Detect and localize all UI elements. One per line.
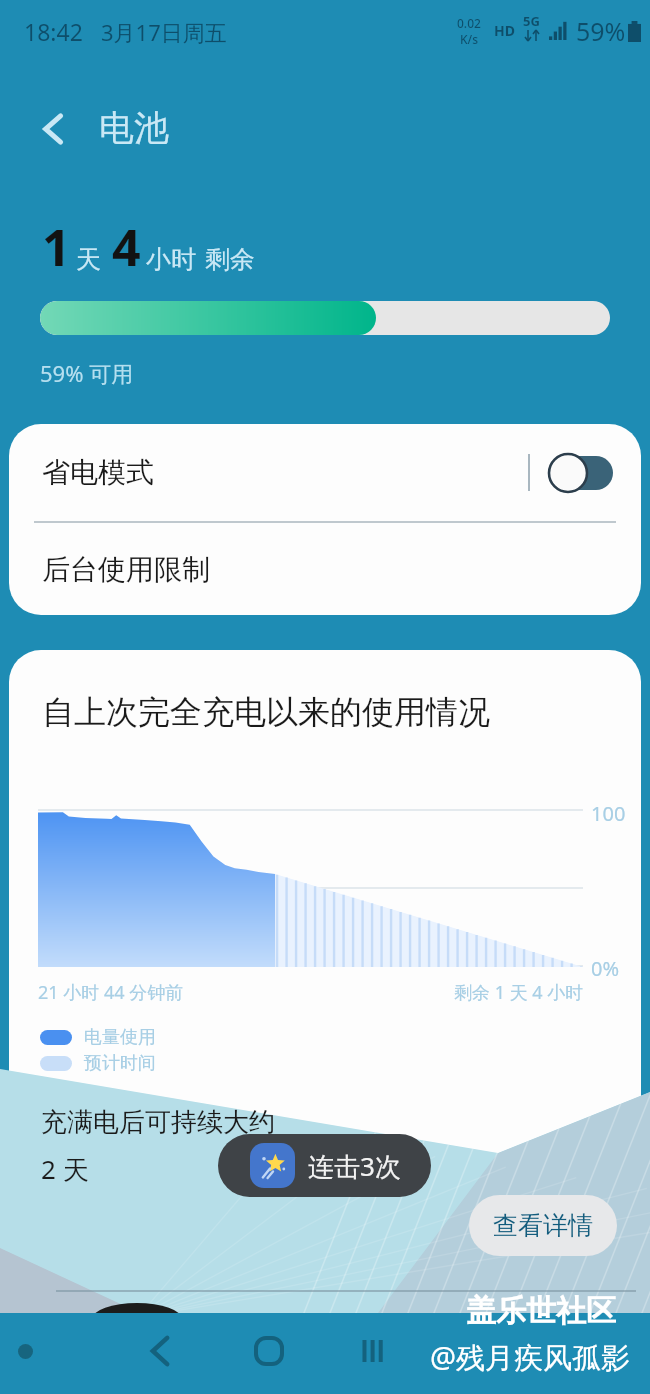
staticText: 连击3次 xyxy=(308,1148,401,1184)
staticText: 充满电后可持续大约 xyxy=(41,1106,275,1139)
staticText: 1 xyxy=(42,213,71,281)
staticText: 18:42 xyxy=(24,16,83,47)
staticText: 省电模式 xyxy=(42,455,154,490)
button[interactable]: Back xyxy=(28,103,80,155)
button[interactable]: Home xyxy=(233,1315,305,1387)
button[interactable]: 连击3次 xyxy=(218,1134,431,1197)
staticText: 天 xyxy=(76,244,101,275)
staticText: 电池 xyxy=(99,106,169,150)
staticText: 0% xyxy=(591,955,620,982)
button[interactable]: 省电模式 xyxy=(9,424,641,521)
staticText: 59% xyxy=(576,14,626,48)
staticText: 4 xyxy=(112,213,141,281)
staticText: 21 小时 44 分钟前 xyxy=(38,980,184,1005)
staticText: HD xyxy=(494,21,515,40)
staticText: 查看详情 xyxy=(493,1210,593,1241)
button[interactable]: Power saving mode toggle xyxy=(551,456,613,490)
staticText: 后台使用限制 xyxy=(42,552,210,587)
button[interactable]: 后台使用限制 xyxy=(9,523,641,615)
staticText: 59% 可用 xyxy=(40,358,134,388)
staticText: 3月17日周五 xyxy=(101,17,227,47)
button[interactable]: 查看详情 xyxy=(469,1195,617,1256)
button[interactable]: Back xyxy=(124,1315,196,1387)
staticText: @残月疾风孤影 xyxy=(430,1337,631,1377)
staticText: 预计时间 xyxy=(84,1052,156,1075)
staticText: 电量使用 xyxy=(84,1026,156,1049)
staticText: K/s xyxy=(460,31,479,47)
staticText: 0.02 xyxy=(457,15,481,31)
staticText: 小时 xyxy=(146,244,196,275)
staticText: 盖乐世社区 xyxy=(466,1292,616,1330)
staticText: 5G xyxy=(523,12,540,30)
staticText: 2 天 xyxy=(41,1151,89,1187)
staticText: 自上次完全充电以来的使用情况 xyxy=(42,692,490,732)
staticText: 剩余 1 天 4 小时 xyxy=(454,980,584,1005)
staticText: 剩余 xyxy=(205,244,255,275)
button[interactable]: Recents xyxy=(337,1315,409,1387)
staticText: 100 xyxy=(591,800,626,827)
